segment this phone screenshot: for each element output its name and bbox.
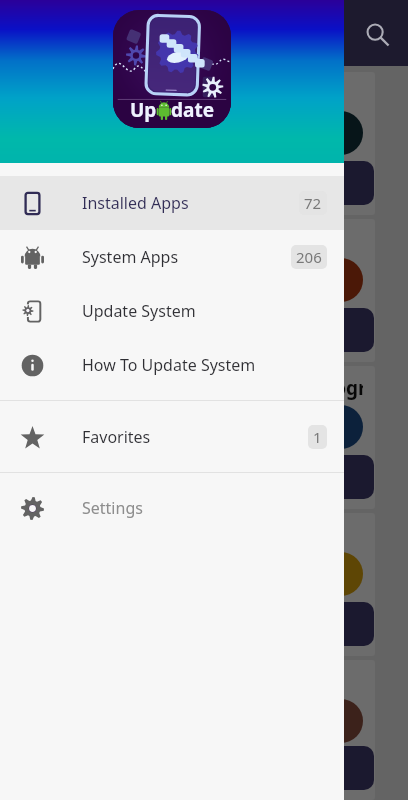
staticText: Settings <box>82 497 327 519</box>
staticText: 1 <box>313 427 322 447</box>
button[interactable]: System Apps <box>0 230 344 284</box>
staticText: 72 <box>304 193 322 213</box>
staticText: System Apps <box>82 246 291 268</box>
staticText: Device Information Protection Program <box>22 375 363 401</box>
button[interactable]: Installed Apps <box>0 176 344 230</box>
button[interactable]: Weather <box>8 660 375 800</box>
button[interactable]: UPDATE <box>258 161 374 205</box>
staticText: date <box>171 97 214 123</box>
button[interactable]: Device Information Protection Program <box>8 366 375 509</box>
button[interactable]: Notes <box>8 513 375 656</box>
staticText: Update System <box>82 300 327 322</box>
button[interactable]: Messages <box>8 72 375 215</box>
staticText: UPDATE <box>290 174 343 193</box>
staticText: UPDATE <box>290 468 343 487</box>
button[interactable]: UPDATE <box>258 455 374 499</box>
button[interactable]: Camera Pro <box>8 219 375 362</box>
button[interactable]: UPDATE <box>258 746 374 790</box>
staticText: 206 <box>296 247 322 267</box>
staticText: Camera Pro <box>22 228 132 254</box>
staticText: Version 1.3.0 <box>22 261 101 279</box>
staticText: Up <box>130 97 157 123</box>
staticText: How To Update System <box>82 354 327 376</box>
button[interactable]: UPDATE <box>258 602 374 646</box>
button[interactable]: Favorites <box>0 410 344 464</box>
staticText: Favorites <box>82 426 308 448</box>
button[interactable]: UPDATE <box>258 308 374 352</box>
button[interactable]: How To Update System <box>0 338 344 392</box>
button[interactable]: Settings <box>0 481 344 535</box>
staticText: Version 1.2.0 <box>22 114 101 132</box>
button[interactable]: Update System <box>0 284 344 338</box>
staticText: Messages <box>22 81 115 107</box>
button[interactable]: Search <box>354 11 402 59</box>
staticText: Installed Apps <box>82 192 299 214</box>
staticText: 12.4 MB <box>22 429 68 445</box>
